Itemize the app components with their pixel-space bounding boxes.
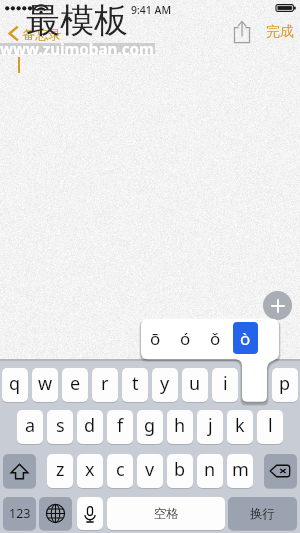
- button[interactable]: 换行: [228, 497, 297, 530]
- staticText: 最模板: [26, 0, 128, 42]
- staticText: a: [25, 413, 36, 438]
- button[interactable]: g: [137, 410, 163, 444]
- button[interactable]: h: [167, 410, 193, 444]
- button[interactable]: d: [77, 410, 103, 444]
- button[interactable]: ò: [233, 322, 258, 354]
- button[interactable]: j: [197, 410, 223, 444]
- staticText: 9:41 AM: [131, 3, 172, 17]
- staticText: f: [117, 413, 124, 438]
- button[interactable]: ō: [143, 322, 168, 354]
- button[interactable]: Dictation: [77, 497, 103, 530]
- staticText: d: [84, 413, 96, 438]
- staticText: s: [56, 413, 65, 438]
- staticText: g: [144, 413, 156, 438]
- button[interactable]: Switch keyboard: [39, 497, 72, 530]
- staticText: r: [101, 371, 109, 396]
- staticText: 备忘录: [22, 26, 61, 42]
- staticText: ō: [150, 327, 161, 350]
- staticText: v: [145, 457, 155, 482]
- button[interactable]: s: [47, 410, 73, 444]
- staticText: t: [132, 371, 139, 396]
- button[interactable]: y: [152, 368, 178, 402]
- staticText: 123: [9, 505, 31, 522]
- button[interactable]: t: [122, 368, 148, 402]
- button[interactable]: ǒ: [203, 322, 228, 354]
- button[interactable]: x: [77, 454, 103, 488]
- staticText: ǒ: [210, 327, 221, 350]
- staticText: 换行: [250, 506, 275, 522]
- button[interactable]: v: [137, 454, 163, 488]
- staticText: c: [116, 457, 125, 482]
- button[interactable]: 完成: [261, 19, 299, 45]
- button[interactable]: q: [2, 368, 28, 402]
- staticText: www.zuimoban.com: [0, 39, 154, 60]
- staticText: w: [38, 371, 53, 396]
- staticText: n: [204, 457, 216, 482]
- staticText: z: [56, 457, 65, 482]
- button[interactable]: u: [182, 368, 208, 402]
- button[interactable]: 备忘录: [4, 22, 67, 45]
- staticText: q: [9, 371, 21, 396]
- staticText: x: [85, 457, 95, 482]
- button[interactable]: e: [62, 368, 88, 402]
- staticText: j: [208, 413, 213, 438]
- staticText: ó: [180, 327, 191, 350]
- staticText: b: [174, 457, 186, 482]
- button[interactable]: p: [272, 368, 298, 402]
- button[interactable]: 123: [3, 497, 36, 530]
- staticText: p: [279, 371, 291, 396]
- button[interactable]: Backspace: [264, 454, 297, 488]
- button[interactable]: Shift: [3, 454, 36, 488]
- button[interactable]: ó: [173, 322, 198, 354]
- button[interactable]: c: [107, 454, 133, 488]
- button[interactable]: b: [167, 454, 193, 488]
- button[interactable]: Add attachment: [263, 291, 292, 320]
- staticText: e: [70, 371, 81, 396]
- staticText: k: [235, 413, 245, 438]
- button[interactable]: 空格: [107, 497, 225, 530]
- staticText: l: [268, 413, 273, 438]
- button[interactable]: r: [92, 368, 118, 402]
- staticText: i: [223, 371, 228, 396]
- staticText: u: [189, 371, 201, 396]
- staticText: y: [160, 371, 170, 396]
- button[interactable]: l: [257, 410, 283, 444]
- button[interactable]: k: [227, 410, 253, 444]
- staticText: h: [174, 413, 186, 438]
- button[interactable]: a: [17, 410, 43, 444]
- staticText: ò: [240, 327, 251, 350]
- button[interactable]: i: [212, 368, 238, 402]
- button[interactable]: z: [47, 454, 73, 488]
- staticText: 空格: [154, 506, 179, 522]
- button[interactable]: w: [32, 368, 58, 402]
- button[interactable]: f: [107, 410, 133, 444]
- button[interactable]: n: [197, 454, 223, 488]
- staticText: 完成: [266, 23, 294, 41]
- button[interactable]: Share: [230, 17, 254, 47]
- staticText: m: [232, 457, 249, 482]
- button[interactable]: m: [227, 454, 253, 488]
